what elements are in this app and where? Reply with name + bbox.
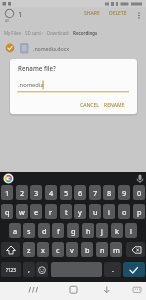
button[interactable]: c: [52, 242, 64, 257]
button[interactable]: x: [37, 242, 49, 257]
staticText: f: [57, 226, 60, 236]
button[interactable]: w: [16, 204, 28, 219]
staticText: ,: [28, 265, 30, 275]
button[interactable]: o: [118, 204, 130, 219]
button[interactable]: d: [38, 223, 50, 238]
staticText: y: [78, 207, 82, 217]
button[interactable]: l: [125, 223, 137, 238]
button[interactable]: t: [60, 204, 72, 219]
button[interactable]: g: [67, 223, 79, 238]
staticText: h: [86, 226, 91, 236]
staticText: e: [34, 207, 39, 217]
staticText: Recordings: [73, 30, 98, 36]
staticText: ?123: [6, 267, 16, 273]
staticText: .: [112, 265, 114, 275]
staticText: a: [13, 226, 18, 236]
staticText: 8: [107, 188, 112, 198]
button[interactable]: 3: [30, 185, 42, 200]
button[interactable]: [26, 284, 40, 298]
staticText: b: [85, 245, 90, 255]
button[interactable]: 5: [60, 185, 72, 200]
staticText: 2: [20, 188, 25, 198]
staticText: s: [27, 226, 31, 236]
staticText: DELETE: [109, 10, 127, 17]
button[interactable]: 9: [118, 185, 130, 200]
button[interactable]: h: [82, 223, 94, 238]
button[interactable]: j: [96, 223, 108, 238]
button[interactable]: k: [111, 223, 123, 238]
button[interactable]: [100, 284, 114, 298]
staticText: SHARE: [84, 10, 100, 17]
button[interactable]: u: [89, 204, 101, 219]
button[interactable]: ,: [23, 262, 35, 277]
button[interactable]: e: [30, 204, 42, 219]
button[interactable]: [36, 262, 48, 277]
button[interactable]: [1, 242, 20, 257]
button[interactable]: f: [52, 223, 64, 238]
staticText: g: [71, 226, 76, 236]
staticText: 9: [122, 188, 127, 198]
staticText: z: [27, 245, 31, 255]
button[interactable]: 0: [133, 185, 145, 200]
staticText: Download: [47, 30, 68, 36]
staticText: t: [65, 207, 68, 217]
staticText: r: [49, 207, 53, 217]
staticText: .nomedia: [18, 81, 44, 89]
staticText: My Files: [4, 30, 21, 36]
button[interactable]: RENAME: [101, 99, 128, 111]
staticText: 1: [18, 9, 23, 19]
staticText: SD card: [25, 30, 41, 36]
button[interactable]: DELETE: [109, 10, 127, 17]
staticText: o: [122, 207, 127, 217]
staticText: w: [19, 207, 25, 217]
button[interactable]: b: [81, 242, 93, 257]
staticText: 4: [49, 188, 54, 198]
button[interactable]: q: [1, 204, 13, 219]
button[interactable]: 6: [74, 185, 86, 200]
button[interactable]: r: [45, 204, 57, 219]
staticText: All: [5, 18, 10, 23]
staticText: 3: [34, 188, 39, 198]
staticText: x: [41, 245, 45, 255]
staticText: 6: [78, 188, 83, 198]
button[interactable]: ?123: [1, 262, 21, 277]
staticText: CANCEL: [80, 102, 99, 109]
button[interactable]: 4: [45, 185, 57, 200]
staticText: c: [56, 245, 60, 255]
button[interactable]: n: [96, 242, 108, 257]
button[interactable]: i: [103, 204, 115, 219]
button[interactable]: v: [66, 242, 78, 257]
button[interactable]: s: [23, 223, 35, 238]
button[interactable]: [126, 242, 145, 257]
staticText: j: [101, 226, 103, 236]
button[interactable]: 8: [103, 185, 115, 200]
button[interactable]: .: [104, 262, 121, 277]
button[interactable]: [66, 284, 80, 298]
button[interactable]: 2: [16, 185, 28, 200]
staticText: n: [100, 245, 105, 255]
staticText: 1: [5, 188, 10, 198]
button[interactable]: 7: [89, 185, 101, 200]
button[interactable]: 1: [1, 185, 13, 200]
staticText: p: [137, 207, 142, 217]
staticText: m: [113, 245, 120, 255]
button[interactable]: [51, 262, 102, 277]
button[interactable]: [123, 262, 145, 277]
staticText: 0: [137, 188, 142, 198]
button[interactable]: y: [74, 204, 86, 219]
staticText: ›: [68, 30, 70, 36]
staticText: 7: [93, 188, 98, 198]
button[interactable]: [130, 284, 144, 298]
staticText: RENAME: [104, 102, 125, 109]
staticText: l: [130, 226, 132, 236]
button[interactable]: a: [9, 223, 21, 238]
staticText: 5: [64, 188, 69, 198]
button[interactable]: CANCEL: [78, 99, 100, 111]
staticText: ›: [42, 30, 44, 36]
button[interactable]: z: [23, 242, 35, 257]
staticText: Rename file?: [18, 64, 56, 72]
button[interactable]: m: [110, 242, 122, 257]
staticText: u: [93, 207, 98, 217]
button[interactable]: SHARE: [84, 10, 100, 17]
button[interactable]: p: [133, 204, 145, 219]
